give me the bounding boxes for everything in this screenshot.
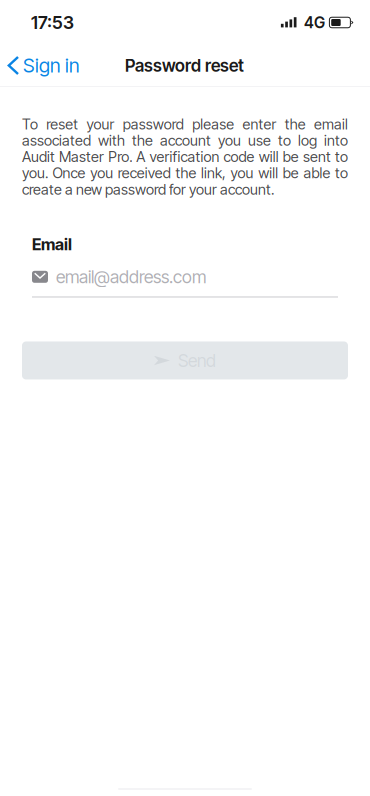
staticText: Sign in: [23, 54, 79, 77]
staticText: please: [192, 115, 234, 133]
staticText: for: [169, 181, 186, 198]
staticText: be: [283, 164, 299, 182]
staticText: use: [248, 132, 271, 149]
staticText: the: [285, 115, 306, 133]
staticText: you.: [22, 164, 48, 182]
staticText: will: [259, 148, 279, 166]
staticText: create: [22, 181, 62, 198]
staticText: you: [218, 132, 241, 149]
staticText: you: [90, 164, 113, 182]
staticText: A: [136, 148, 145, 166]
staticText: log: [298, 132, 317, 149]
staticText: password: [105, 181, 166, 198]
staticText: password: [123, 115, 184, 133]
button[interactable]: Send: [22, 341, 348, 379]
staticText: Send: [178, 350, 216, 371]
staticText: 17:53: [31, 12, 74, 33]
staticText: a: [65, 181, 73, 198]
staticText: Pro.: [108, 148, 132, 166]
staticText: be: [283, 148, 299, 166]
staticText: to: [335, 148, 348, 166]
staticText: into: [324, 132, 348, 149]
staticText: Audit: [22, 148, 55, 166]
staticText: Once: [53, 164, 86, 182]
staticText: will: [258, 164, 278, 182]
staticText: associated: [22, 132, 91, 149]
staticText: code: [224, 148, 255, 166]
staticText: link,: [201, 164, 226, 182]
staticText: verification: [149, 148, 219, 166]
staticText: account.: [220, 181, 274, 198]
staticText: with: [98, 132, 125, 149]
staticText: the: [175, 164, 196, 182]
staticText: email@address.com: [56, 266, 206, 287]
button[interactable]: Sign in: [0, 45, 89, 86]
staticText: enter: [242, 115, 276, 133]
staticText: your: [87, 115, 115, 133]
staticText: Email: [32, 234, 72, 254]
staticText: Master: [59, 148, 104, 166]
staticText: you: [231, 164, 254, 182]
staticText: To: [22, 115, 38, 133]
staticText: sent: [303, 148, 331, 166]
staticText: 4G: [304, 13, 325, 32]
staticText: email: [314, 115, 348, 133]
staticText: received: [118, 164, 171, 182]
staticText: Password reset: [125, 55, 244, 76]
staticText: reset: [46, 115, 78, 133]
staticText: to: [335, 164, 348, 182]
staticText: the: [132, 132, 153, 149]
staticText: your: [189, 181, 217, 198]
staticText: account: [160, 132, 211, 149]
staticText: able: [303, 164, 330, 182]
staticText: to: [278, 132, 291, 149]
staticText: new: [76, 181, 102, 198]
